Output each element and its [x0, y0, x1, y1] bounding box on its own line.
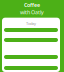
- staticText: Today: [26, 21, 36, 26]
- staticText: with Oatly: [20, 9, 44, 16]
- staticText: Coffee: [24, 1, 40, 9]
